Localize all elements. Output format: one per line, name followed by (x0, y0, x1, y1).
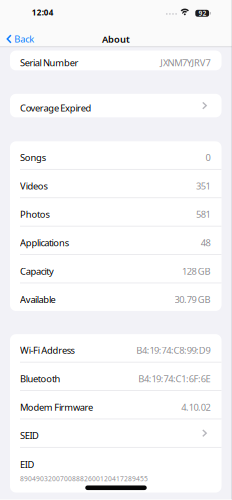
staticText: 92 (198, 9, 206, 18)
staticText: Songs (20, 151, 46, 164)
staticText: Coverage Expired (20, 102, 91, 114)
staticText: Applications (20, 236, 69, 249)
staticText: Bluetooth (20, 372, 61, 385)
staticText: 48 (201, 236, 210, 249)
staticText: EID (20, 458, 34, 471)
staticText: 581 (196, 208, 210, 220)
staticText: 128 GB (182, 265, 210, 277)
staticText: 351 (196, 180, 210, 192)
staticText: Back (14, 33, 34, 45)
staticText: Capacity (20, 265, 54, 277)
staticText: 89049032007008882600120417289455 (20, 474, 148, 483)
staticText: Modem Firmware (20, 401, 93, 413)
staticText: Available (20, 293, 56, 306)
staticText: SEID (20, 429, 39, 442)
staticText: 30.79 GB (175, 293, 210, 306)
button[interactable]: Coverage Expired (10, 94, 221, 117)
staticText: 0 (205, 151, 210, 164)
staticText: About (102, 33, 130, 45)
button[interactable]: SEID (10, 419, 221, 447)
staticText: B4:19:74:C8:99:D9 (136, 344, 210, 356)
staticText: Wi-Fi Address (20, 344, 74, 356)
staticText: B4:19:74:C1:6F:6E (138, 372, 210, 385)
staticText: 4.10.02 (181, 401, 210, 413)
staticText: 12:04 (32, 7, 54, 18)
staticText: Photos (20, 208, 49, 220)
button[interactable]: Back (0, 33, 34, 44)
staticText: Videos (20, 180, 47, 192)
staticText: Serial Number (20, 57, 78, 69)
staticText: JXNM7YJRV7 (160, 57, 210, 69)
